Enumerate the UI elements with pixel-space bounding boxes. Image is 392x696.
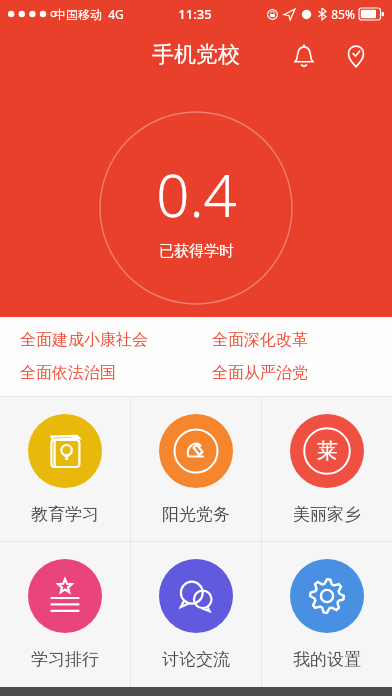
staticText: 4G	[108, 6, 124, 22]
staticText: 全面依法治国	[20, 363, 116, 383]
button[interactable]: 我的设置	[262, 542, 392, 687]
staticText: 阳光党务	[162, 504, 230, 525]
staticText: 11:35	[178, 5, 212, 23]
staticText: 全面深化改革	[212, 330, 308, 350]
staticText: 美丽家乡	[293, 504, 361, 525]
staticText: 莱	[317, 438, 338, 464]
button[interactable]: Notifications	[284, 36, 324, 76]
staticText: 手机党校	[152, 41, 240, 69]
button[interactable]: 莱	[262, 397, 392, 541]
staticText: 讨论交流	[162, 649, 230, 670]
button[interactable]: 阳光党务	[131, 397, 261, 541]
staticText: 85%	[331, 6, 355, 22]
staticText: 全面从严治党	[212, 363, 308, 383]
button[interactable]: 学习排行	[0, 542, 130, 687]
staticText: 我的设置	[293, 649, 361, 670]
staticText: 全面建成小康社会	[20, 330, 148, 350]
staticText: 0.4	[156, 155, 237, 234]
button[interactable]: Check in location	[336, 36, 376, 76]
staticText: 教育学习	[31, 504, 99, 525]
staticText: 已获得学时	[159, 242, 234, 261]
staticText: 中国移动	[54, 7, 102, 22]
staticText: 学习排行	[31, 649, 99, 670]
button[interactable]: 教育学习	[0, 397, 130, 541]
button[interactable]: 讨论交流	[131, 542, 261, 687]
